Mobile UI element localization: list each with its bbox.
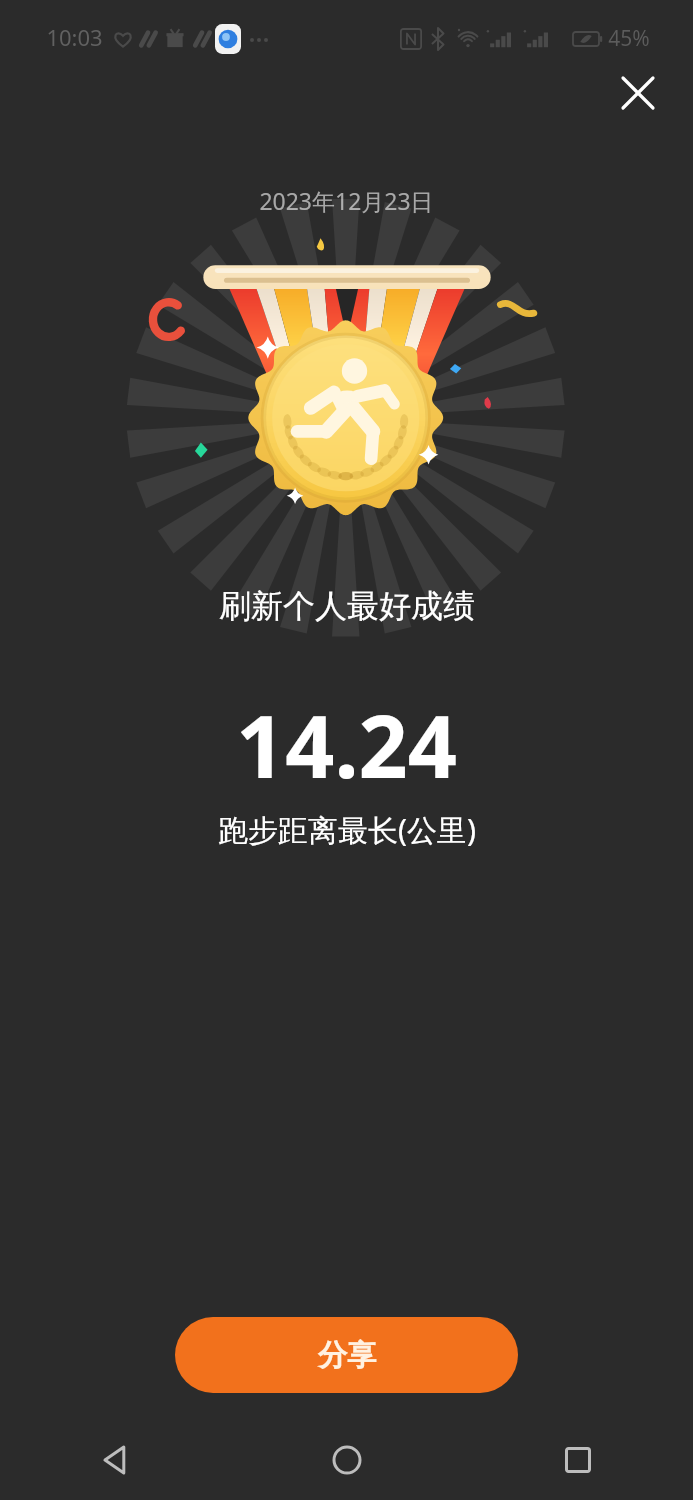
staticText: 10:03: [46, 22, 103, 52]
staticText: 刷新个人最好成绩: [219, 586, 475, 626]
button[interactable]: Back: [0, 1420, 231, 1500]
button[interactable]: Close: [610, 65, 666, 121]
staticText: 分享: [318, 1337, 376, 1374]
button[interactable]: Home: [231, 1420, 462, 1500]
staticText: 45%: [608, 24, 650, 53]
button[interactable]: 分享: [175, 1317, 518, 1393]
button[interactable]: Recents: [462, 1420, 693, 1500]
staticText: 跑步距离最长(公里): [218, 809, 476, 850]
staticText: 14.24: [236, 686, 457, 803]
staticText: 2023年12月23日: [259, 185, 434, 216]
